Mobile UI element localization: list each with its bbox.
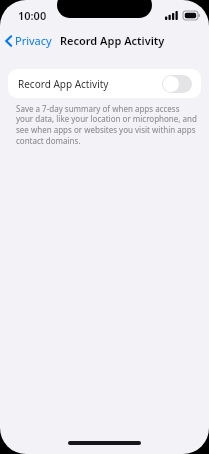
button[interactable]: Privacy bbox=[0, 30, 58, 51]
button[interactable]: Record App Activity toggle, off bbox=[162, 75, 192, 93]
button[interactable]: Record App Activity bbox=[8, 69, 201, 98]
staticText: Save a 7-day summary of when apps access… bbox=[16, 103, 197, 147]
staticText: Record App Activity bbox=[60, 33, 165, 48]
staticText: Record App Activity bbox=[18, 77, 162, 91]
staticText: 10:00 bbox=[18, 8, 47, 23]
staticText: Privacy bbox=[15, 33, 52, 48]
